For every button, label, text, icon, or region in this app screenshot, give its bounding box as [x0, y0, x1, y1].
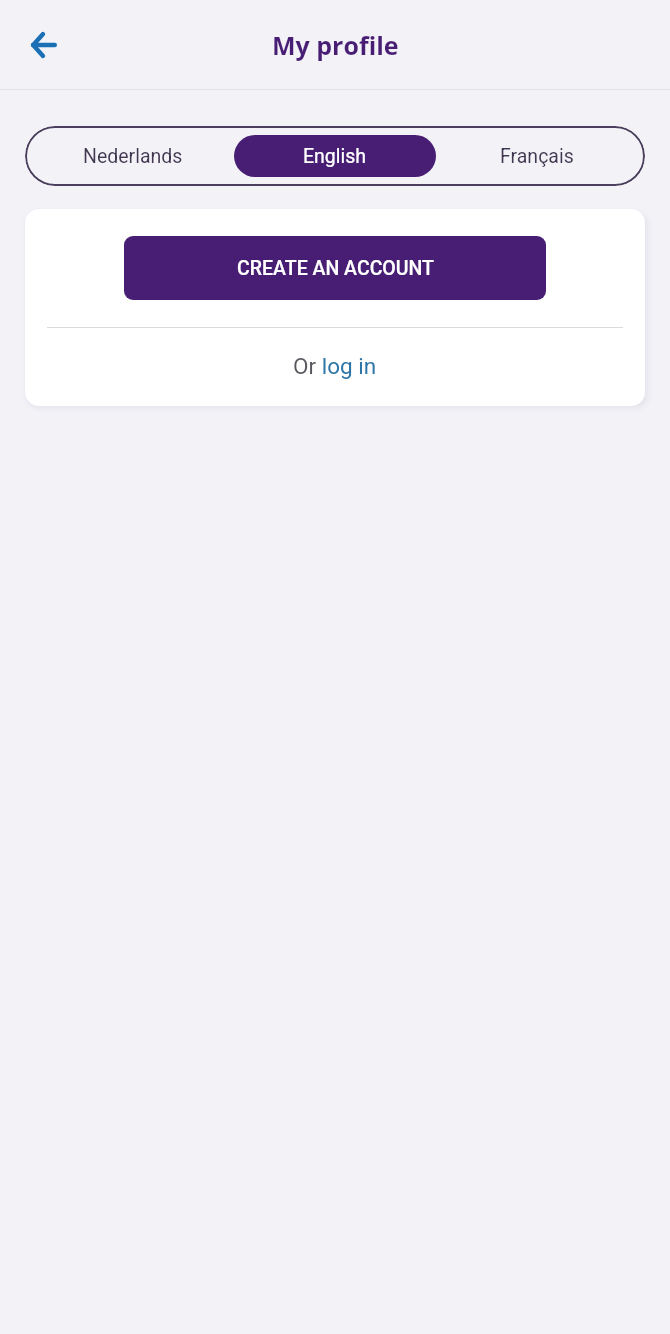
button[interactable]: Nederlands [32, 135, 234, 177]
staticText: My profile [272, 28, 399, 62]
staticText: Français [500, 145, 574, 168]
button[interactable]: Français [436, 135, 638, 177]
button[interactable]: CREATE AN ACCOUNT [124, 236, 546, 300]
staticText: English [303, 145, 367, 168]
button[interactable]: Back [18, 20, 68, 70]
button[interactable]: Or log in [293, 353, 377, 379]
button[interactable]: English [234, 135, 436, 177]
staticText: Nederlands [83, 145, 183, 168]
staticText: CREATE AN ACCOUNT [237, 257, 434, 280]
